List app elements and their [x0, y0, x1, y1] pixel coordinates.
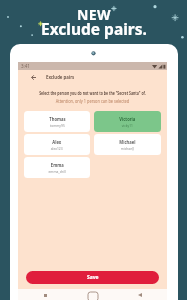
- button[interactable]: Victoria: [94, 111, 161, 132]
- staticText: Attention, only 1 person can be selected: [34, 98, 151, 104]
- staticText: Exclude pairs.: [41, 18, 147, 39]
- button[interactable]: Save: [26, 271, 159, 284]
- staticText: tommy95: [50, 123, 65, 129]
- button[interactable]: Emma: [24, 157, 90, 178]
- staticText: Exclude pairs: [46, 73, 75, 80]
- staticText: michaelJ: [121, 146, 134, 152]
- button[interactable]: Alex: [24, 134, 90, 155]
- button[interactable]: Back: [28, 72, 38, 82]
- button[interactable]: Recent apps: [40, 290, 50, 300]
- staticText: vicky11: [122, 123, 133, 129]
- button[interactable]: Back: [135, 290, 145, 300]
- staticText: emma_chill: [48, 169, 66, 175]
- staticText: 3:41: [21, 63, 30, 69]
- staticText: Save: [87, 274, 99, 281]
- button[interactable]: Home: [86, 289, 100, 300]
- staticText: Victoria: [119, 115, 136, 122]
- button[interactable]: Michael: [94, 134, 161, 155]
- staticText: Thomas: [49, 115, 66, 122]
- staticText: Select the person you do not want to be …: [38, 90, 147, 96]
- staticText: Alex: [52, 138, 62, 145]
- staticText: Emma: [51, 161, 64, 168]
- staticText: alex123: [51, 146, 63, 152]
- staticText: NEW: [77, 5, 111, 24]
- button[interactable]: Thomas: [24, 111, 90, 132]
- staticText: Michael: [119, 138, 136, 145]
